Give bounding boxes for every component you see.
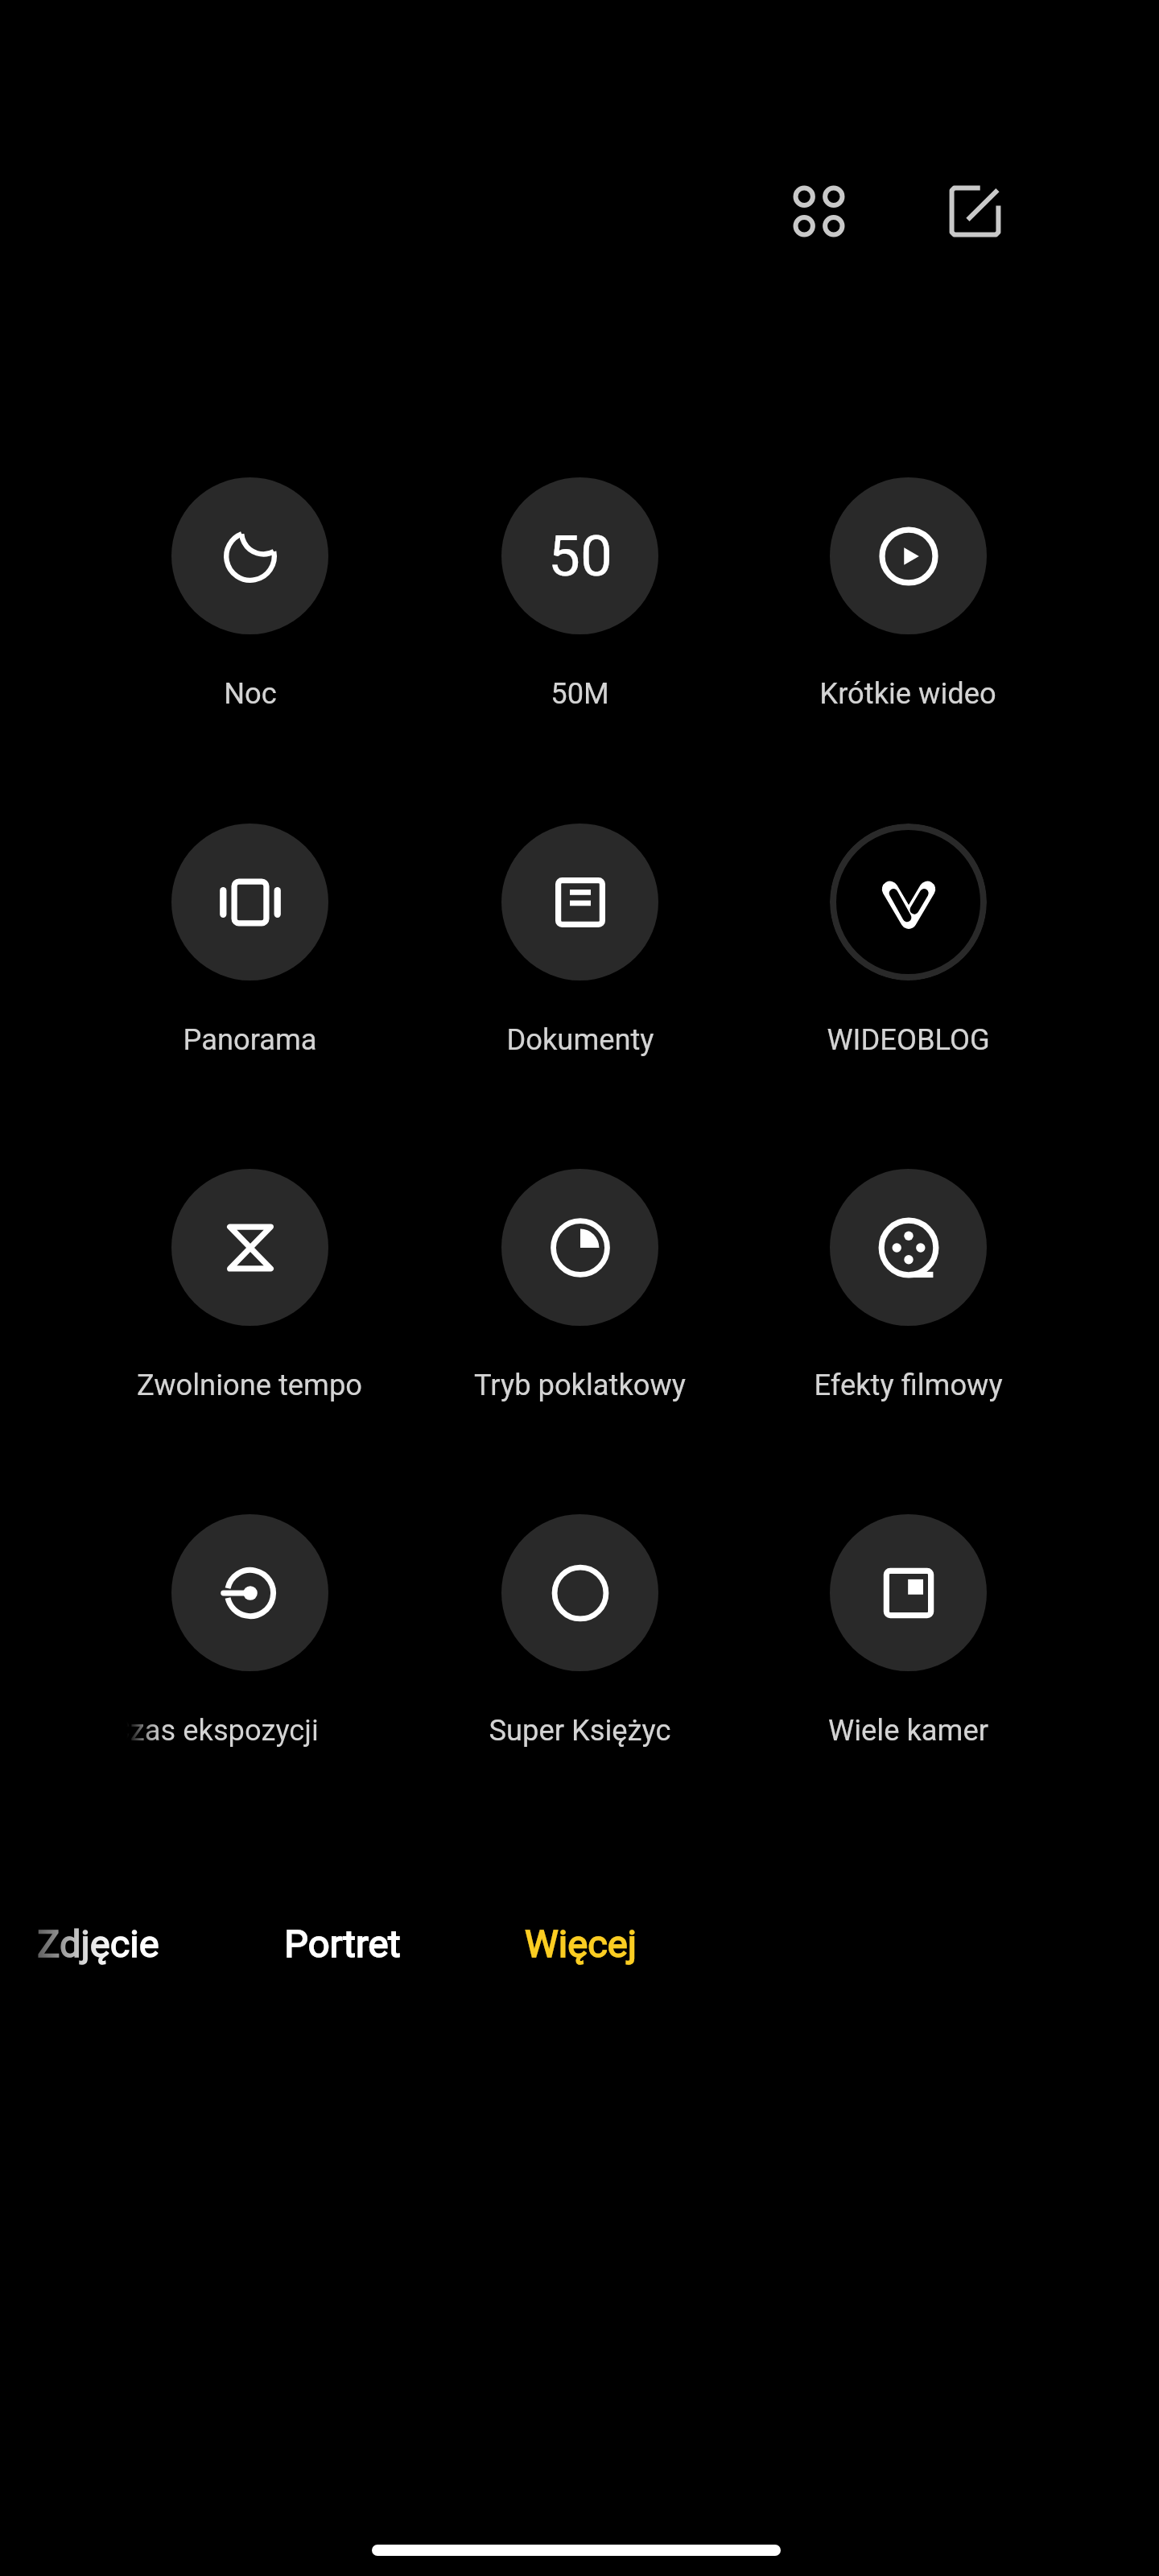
staticText: 50M	[551, 676, 609, 711]
button[interactable]: Wiele kamer	[747, 1514, 1069, 1764]
button[interactable]: Krótkie wideo	[747, 477, 1069, 727]
staticText: Portret	[284, 1922, 401, 1966]
button[interactable]: WIDEOBLOG	[747, 824, 1069, 1073]
button[interactable]: Zdjęcie	[0, 1895, 219, 1992]
staticText: Więcej	[525, 1922, 637, 1966]
staticText: Czas ekspozycji	[111, 1713, 319, 1748]
staticText: Dokumenty	[506, 1022, 654, 1057]
staticText: 50	[548, 522, 612, 589]
staticText: Super Księżyc	[489, 1713, 671, 1748]
staticText: WIDEOBLOG	[827, 1022, 990, 1057]
button[interactable]: Switch layout	[773, 166, 864, 256]
button[interactable]: Panorama	[89, 824, 410, 1073]
button[interactable]: Efekty filmowy	[747, 1169, 1069, 1418]
staticText: Tryb poklatkowy	[474, 1368, 686, 1402]
button[interactable]: Tryb poklatkowy	[419, 1169, 740, 1418]
staticText: Noc	[224, 676, 277, 711]
button[interactable]: Portret	[221, 1895, 463, 1992]
button[interactable]: Czas ekspozycji	[89, 1514, 410, 1764]
staticText: Wiele kamer	[828, 1713, 988, 1748]
staticText: Efekty filmowy	[814, 1368, 1003, 1402]
button[interactable]: Edit modes	[930, 166, 1020, 256]
button[interactable]: Dokumenty	[419, 824, 740, 1073]
button[interactable]: Zwolnione tempo	[89, 1169, 410, 1418]
button[interactable]: Noc	[89, 477, 410, 727]
staticText: Zdjęcie	[37, 1922, 159, 1966]
button[interactable]: 50	[419, 477, 740, 727]
button[interactable]: Super Księżyc	[419, 1514, 740, 1764]
staticText: Krótkie wideo	[819, 676, 996, 711]
button[interactable]: Więcej	[460, 1895, 701, 1992]
staticText: Panorama	[183, 1022, 317, 1057]
staticText: Zwolnione tempo	[137, 1368, 362, 1402]
